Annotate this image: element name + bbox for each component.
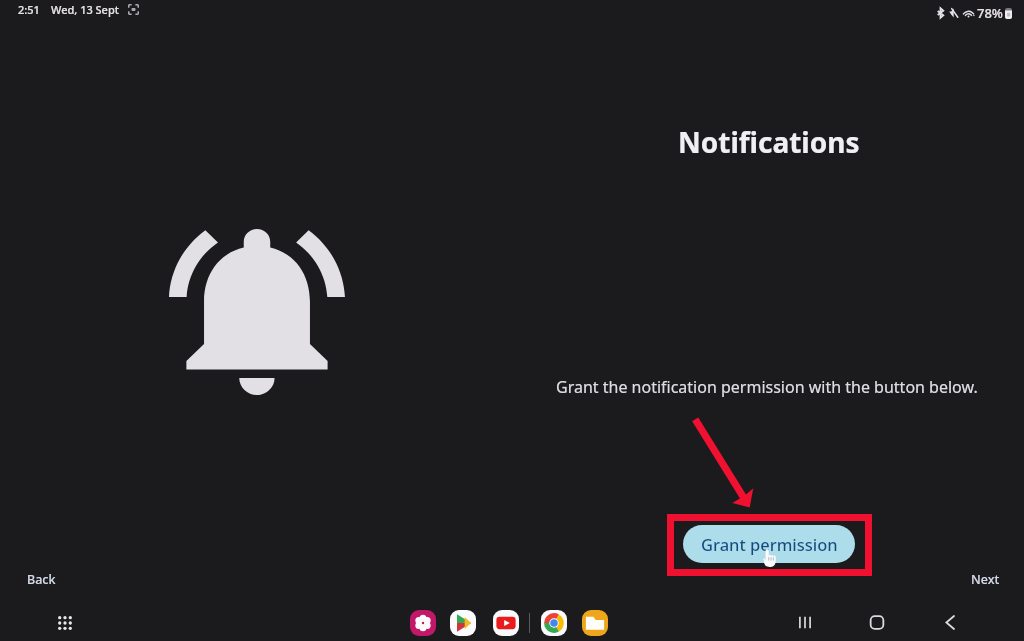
- button[interactable]: Home: [857, 609, 897, 636]
- button[interactable]: Grant permission: [683, 525, 855, 563]
- staticText: Wed, 13 Sept: [51, 2, 119, 17]
- staticText: Next: [971, 571, 1000, 588]
- staticText: Back: [27, 571, 56, 588]
- button[interactable]: Play Store: [450, 610, 476, 636]
- button[interactable]: Chrome: [541, 610, 567, 636]
- staticText: Notifications: [678, 123, 860, 161]
- staticText: 2:51: [18, 2, 40, 17]
- staticText: Grant permission: [701, 533, 838, 555]
- button[interactable]: Back: [930, 609, 970, 636]
- button[interactable]: Recents: [785, 609, 825, 636]
- staticText: 78%: [977, 4, 1003, 22]
- button[interactable]: Gallery: [410, 610, 436, 636]
- button[interactable]: YouTube: [493, 610, 519, 636]
- button[interactable]: My Files: [582, 610, 608, 636]
- button[interactable]: Apps: [51, 609, 79, 637]
- button[interactable]: Next: [971, 571, 1000, 588]
- staticText: Grant the notification permission with t…: [556, 376, 978, 398]
- button[interactable]: Back: [27, 571, 56, 588]
